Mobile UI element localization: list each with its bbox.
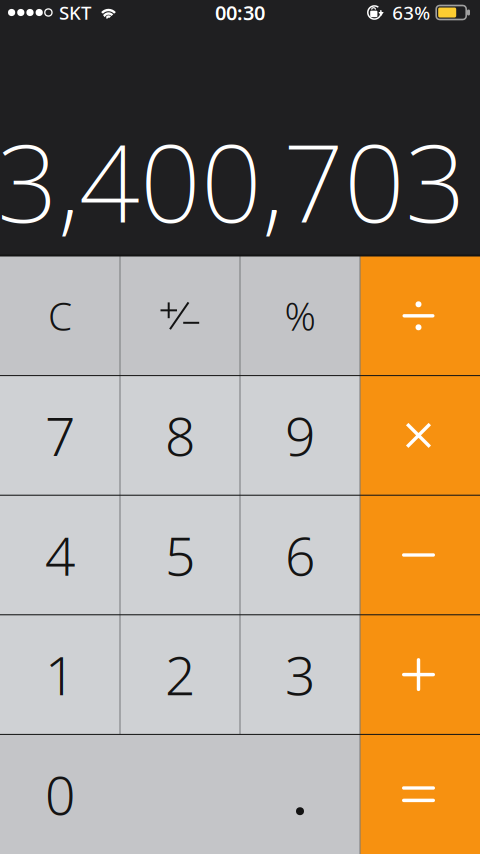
button[interactable]: 1 xyxy=(0,615,120,734)
staticText: 63% xyxy=(392,0,430,25)
staticText: 3,400,703 xyxy=(0,110,466,252)
staticText: 00:30 xyxy=(215,0,265,26)
staticText: 8 xyxy=(165,400,195,471)
button[interactable]: 3 xyxy=(240,615,360,734)
button[interactable]: 5 xyxy=(120,495,240,615)
staticText: 5 xyxy=(165,520,195,590)
staticText: 7 xyxy=(45,400,75,471)
button[interactable]: Plus minus xyxy=(120,256,240,376)
button[interactable]: 7 xyxy=(0,376,120,495)
button[interactable]: Divide xyxy=(360,256,480,376)
button[interactable]: 2 xyxy=(120,615,240,734)
button[interactable]: Equals xyxy=(360,734,480,854)
button[interactable]: 8 xyxy=(120,376,240,495)
button[interactable]: Clear xyxy=(0,256,120,376)
staticText: 1 xyxy=(45,639,75,710)
button[interactable]: Subtract xyxy=(360,495,480,615)
staticText: 2 xyxy=(165,639,195,710)
staticText: 9 xyxy=(285,400,315,471)
button[interactable]: Percent xyxy=(240,256,360,376)
staticText: 3 xyxy=(285,639,315,710)
staticText: C xyxy=(48,290,72,341)
staticText: 6 xyxy=(285,520,315,590)
button[interactable]: 9 xyxy=(240,376,360,495)
button[interactable]: 6 xyxy=(240,495,360,615)
button[interactable]: Multiply xyxy=(360,376,480,495)
button[interactable]: 4 xyxy=(0,495,120,615)
staticText: 0 xyxy=(45,759,75,830)
staticText: % xyxy=(284,290,315,341)
staticText: SKT xyxy=(59,0,91,25)
button[interactable]: Decimal point xyxy=(240,734,360,854)
button[interactable]: Add xyxy=(360,615,480,734)
button[interactable]: 0 xyxy=(0,734,240,854)
staticText: 4 xyxy=(45,520,75,590)
